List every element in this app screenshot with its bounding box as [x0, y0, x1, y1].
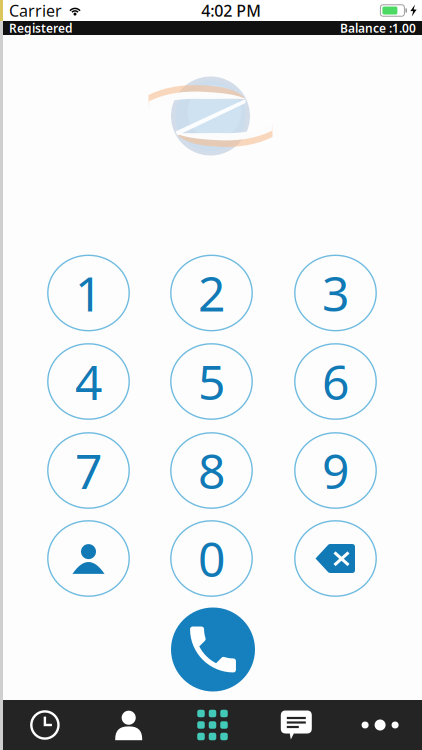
- staticText: 0: [198, 527, 225, 590]
- button[interactable]: 6: [294, 343, 377, 420]
- button[interactable]: Recents: [3, 700, 87, 750]
- staticText: 2: [198, 261, 225, 325]
- button[interactable]: 9: [294, 432, 377, 509]
- staticText: Registered: [9, 20, 73, 36]
- staticText: 4:02 PM: [201, 0, 261, 21]
- button[interactable]: Messages: [254, 700, 338, 750]
- staticText: 8: [198, 439, 225, 502]
- button[interactable]: Delete: [294, 520, 377, 597]
- staticText: 9: [322, 439, 349, 502]
- staticText: Carrier: [9, 0, 62, 21]
- button[interactable]: 5: [170, 343, 253, 420]
- staticText: 6: [322, 350, 349, 413]
- button[interactable]: 1: [47, 254, 130, 331]
- staticText: 1: [75, 261, 102, 325]
- button[interactable]: Contacts: [87, 700, 171, 750]
- staticText: 5: [198, 350, 225, 413]
- button[interactable]: 8: [170, 432, 253, 509]
- button[interactable]: 7: [47, 432, 130, 509]
- staticText: Balance :1.00: [340, 20, 416, 36]
- staticText: 7: [75, 439, 102, 502]
- button[interactable]: 0: [170, 520, 253, 597]
- button[interactable]: Call: [171, 607, 255, 691]
- button[interactable]: Contacts: [47, 520, 130, 597]
- button[interactable]: More: [338, 700, 422, 750]
- staticText: 3: [322, 261, 349, 325]
- button[interactable]: Keypad: [171, 700, 254, 750]
- button[interactable]: 4: [47, 343, 130, 420]
- button[interactable]: 2: [170, 254, 253, 331]
- button[interactable]: 3: [294, 254, 377, 331]
- staticText: 4: [75, 350, 102, 413]
